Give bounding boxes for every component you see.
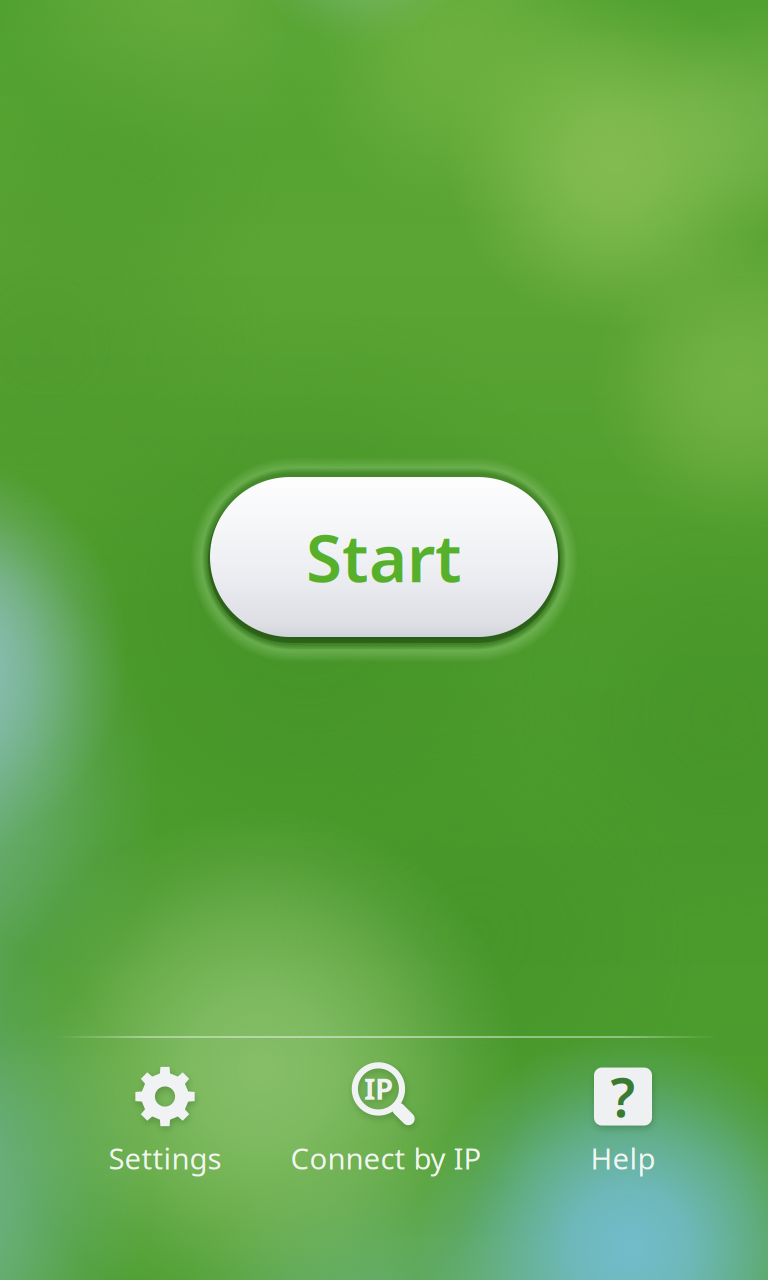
staticText: IP (364, 1069, 393, 1108)
staticText: Settings (108, 1138, 221, 1177)
staticText: Connect by IP (290, 1138, 481, 1177)
staticText: Help (590, 1138, 655, 1177)
staticText: Start (306, 514, 462, 600)
button[interactable]: IP (261, 1062, 511, 1180)
button[interactable]: ? (533, 1062, 713, 1180)
staticText: ? (610, 1061, 635, 1132)
button[interactable]: Settings (50, 1062, 280, 1180)
button[interactable]: Start (194, 457, 574, 657)
